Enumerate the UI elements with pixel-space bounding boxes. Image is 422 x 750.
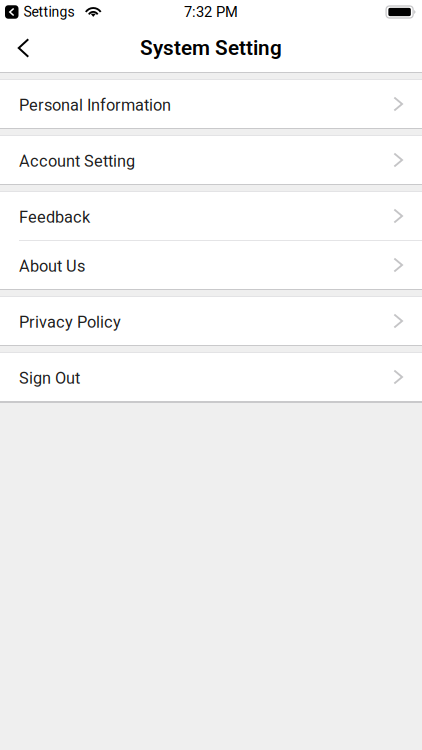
- staticText: Account Setting: [19, 152, 135, 171]
- button[interactable]: Feedback: [0, 192, 422, 240]
- staticText: Personal Information: [19, 96, 171, 115]
- staticText: System Setting: [140, 36, 282, 60]
- staticText: About Us: [19, 257, 85, 276]
- staticText: 7:32 PM: [184, 3, 238, 21]
- staticText: Feedback: [19, 208, 90, 227]
- button[interactable]: Privacy Policy: [0, 297, 422, 345]
- staticText: Settings: [23, 4, 74, 20]
- button[interactable]: Sign Out: [0, 353, 422, 401]
- staticText: Sign Out: [19, 369, 80, 388]
- button[interactable]: Back: [0, 24, 47, 72]
- staticText: Privacy Policy: [19, 313, 121, 332]
- button[interactable]: About Us: [0, 241, 422, 289]
- button[interactable]: Personal Information: [0, 80, 422, 128]
- button[interactable]: Account Setting: [0, 136, 422, 184]
